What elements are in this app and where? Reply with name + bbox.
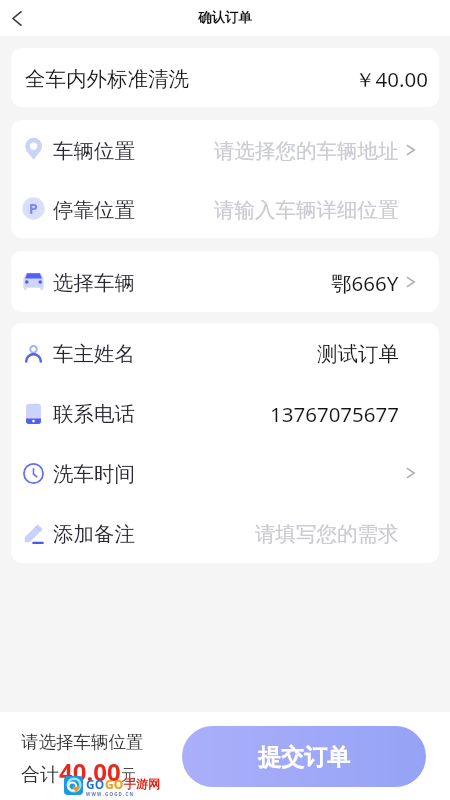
staticText: 鄂666Y: [331, 269, 399, 297]
staticText: 停靠位置: [53, 197, 135, 223]
staticText: 测试订单: [317, 341, 399, 367]
staticText: 请选择车辆位置: [21, 731, 144, 753]
staticText: 确认订单: [198, 9, 252, 26]
staticText: 合计: [21, 763, 59, 787]
staticText: 13767075677: [270, 400, 399, 428]
staticText: 请输入车辆详细位置: [214, 197, 399, 223]
staticText: 车辆位置: [53, 138, 135, 164]
staticText: 洗车时间: [53, 461, 135, 487]
staticText: 40.00: [59, 755, 121, 788]
button[interactable]: 选择车辆: [11, 251, 439, 312]
staticText: 请填写您的需求: [255, 521, 399, 547]
button[interactable]: P: [11, 179, 439, 238]
staticText: 请选择您的车辆地址: [214, 138, 399, 164]
staticText: W W W . G O G D . C N: [86, 791, 134, 797]
staticText: 车主姓名: [53, 341, 135, 367]
button[interactable]: 添加备注: [11, 503, 439, 563]
staticText: GO: [105, 776, 124, 792]
staticText: GO: [86, 776, 105, 792]
staticText: 联系电话: [53, 401, 135, 427]
button[interactable]: Back: [1, 2, 33, 34]
button[interactable]: 洗车时间: [11, 443, 439, 503]
staticText: 提交订单: [258, 743, 350, 772]
button[interactable]: 联系电话: [11, 383, 439, 443]
staticText: 手游网: [124, 776, 160, 791]
button[interactable]: 提交订单: [182, 726, 426, 787]
button[interactable]: 全车内外标准清洗: [11, 48, 439, 107]
staticText: 元: [121, 766, 136, 785]
button[interactable]: 车主姓名: [11, 323, 439, 383]
staticText: 添加备注: [53, 521, 135, 547]
button[interactable]: 车辆位置: [11, 120, 439, 179]
staticText: 选择车辆: [53, 270, 135, 296]
staticText: 全车内外标准清洗: [25, 66, 189, 92]
staticText: ￥40.00: [355, 65, 428, 93]
staticText: P: [29, 199, 38, 218]
